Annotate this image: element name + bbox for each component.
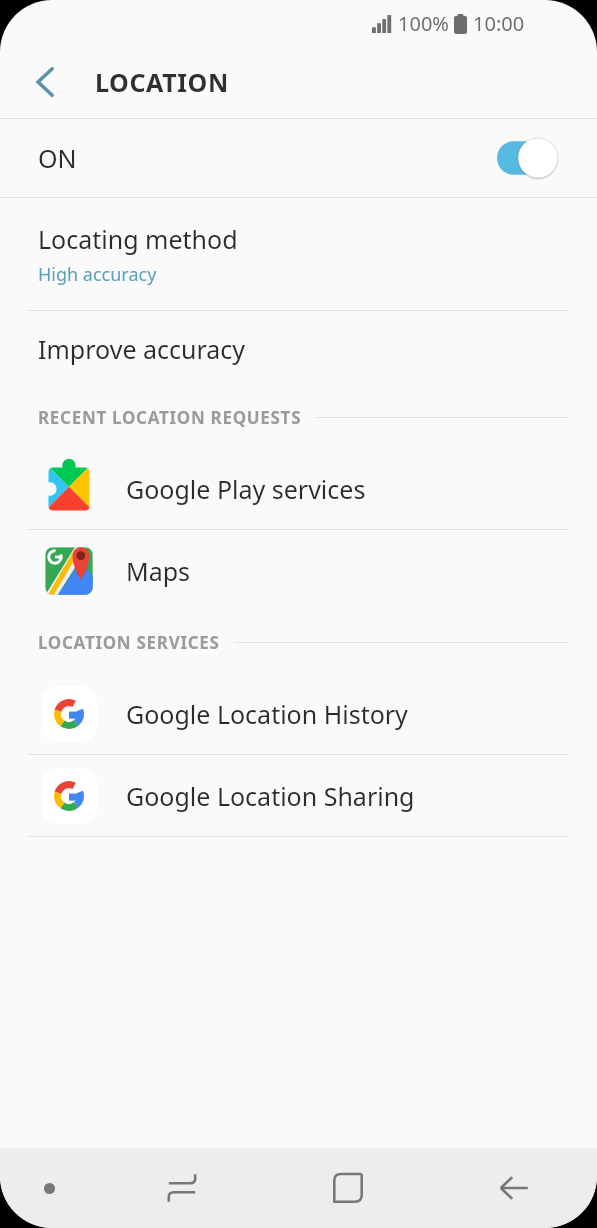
staticText: Maps	[126, 554, 191, 588]
staticText: ON	[38, 141, 77, 175]
staticText: 100%	[398, 10, 449, 37]
staticText: Google Location Sharing	[126, 779, 415, 813]
button[interactable]: Improve accuracy	[0, 311, 597, 386]
button[interactable]: Recents	[99, 1148, 265, 1228]
button[interactable]: Maps	[0, 530, 597, 611]
staticText: High accuracy	[38, 262, 157, 287]
button[interactable]: Back	[22, 58, 70, 106]
button[interactable]: ON	[0, 119, 597, 197]
button[interactable]: Back	[431, 1148, 597, 1228]
button[interactable]: Home	[265, 1148, 431, 1228]
button[interactable]: Locating method	[0, 198, 597, 310]
staticText: RECENT LOCATION REQUESTS	[38, 406, 302, 429]
staticText: 10:00	[473, 10, 525, 37]
staticText: Improve accuracy	[38, 332, 246, 366]
staticText: LOCATION SERVICES	[38, 631, 220, 654]
button[interactable]: Google Play services	[0, 448, 597, 529]
staticText: Google Play services	[126, 472, 366, 506]
button[interactable]: Google Location History	[0, 673, 597, 754]
staticText: Google Location History	[126, 697, 408, 731]
staticText: Locating method	[38, 222, 238, 256]
button[interactable]: Google Location Sharing	[0, 755, 597, 836]
staticText: LOCATION	[95, 65, 229, 99]
